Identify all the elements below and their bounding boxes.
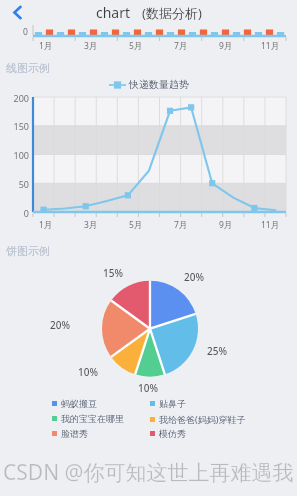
button[interactable]: 我的宝宝在哪里 [52,413,150,424]
staticText: 50 [0,178,29,190]
staticText: 25% [207,344,227,358]
staticText: 贴鼻子 [159,398,186,409]
staticText: 7月 [174,219,188,231]
staticText: CSDN @你可知这世上再难遇我 [3,458,294,487]
staticText: 11月 [261,40,280,52]
staticText: 15% [103,266,123,280]
button[interactable]: 蚂蚁搬豆 [52,398,150,409]
staticText: 3月 [84,219,98,231]
staticText: 1月 [39,40,53,52]
staticText: 150 [0,120,29,132]
button[interactable]: Back [0,0,34,25]
staticText: 10% [78,365,98,379]
staticText: 我给爸爸(妈妈)穿鞋子 [159,413,246,425]
staticText: 蚂蚁搬豆 [61,398,97,409]
staticText: 脸谱秀 [61,428,88,439]
staticText: 7月 [174,40,188,52]
staticText: 200 [0,92,29,104]
staticText: 快递数量趋势 [129,78,189,91]
staticText: 9月 [219,219,233,231]
staticText: 饼图示例 [6,244,50,258]
button[interactable]: 贴鼻子 [150,398,297,409]
staticText: 5月 [129,219,143,231]
button[interactable]: 模仿秀 [150,428,297,439]
staticText: (数据分析) [142,4,202,22]
staticText: 20% [184,270,204,284]
staticText: 5月 [129,40,143,52]
staticText: 1月 [39,219,53,231]
staticText: 线图示例 [6,61,50,75]
button[interactable]: 快递数量趋势 [109,78,189,91]
staticText: 模仿秀 [159,428,186,439]
staticText: 20% [50,318,70,332]
staticText: 我的宝宝在哪里 [61,413,124,424]
staticText: chart [96,3,131,22]
staticText: 11月 [261,219,280,231]
staticText: 3月 [84,40,98,52]
staticText: 9月 [219,40,233,52]
button[interactable]: 脸谱秀 [52,428,150,439]
staticText: 100 [0,149,29,161]
staticText: 0 [0,207,29,219]
staticText: 0 [23,26,28,38]
button[interactable]: 我给爸爸(妈妈)穿鞋子 [150,413,297,425]
staticText: 10% [138,381,158,395]
